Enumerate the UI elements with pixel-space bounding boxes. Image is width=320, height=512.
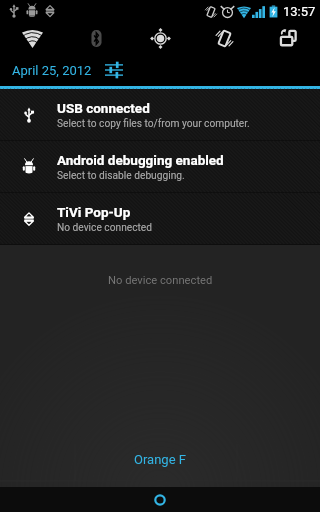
staticText: USB connected xyxy=(57,100,150,116)
button[interactable]: Auto rotate xyxy=(256,22,320,54)
button[interactable]: Orange F xyxy=(134,452,186,467)
button[interactable]: Home xyxy=(148,488,172,512)
staticText: Select to disable debugging. xyxy=(57,170,185,182)
button[interactable]: Location xyxy=(128,22,192,54)
button[interactable]: Wi-Fi xyxy=(0,22,64,54)
button[interactable]: TiVi Pop-Up xyxy=(0,193,320,244)
button[interactable]: Sound xyxy=(192,22,256,54)
button[interactable]: Android debugging enabled xyxy=(0,141,320,192)
staticText: TiVi Pop-Up xyxy=(57,204,131,220)
staticText: April 25, 2012 xyxy=(12,63,92,78)
staticText: 13:57 xyxy=(283,4,316,19)
button[interactable]: Settings xyxy=(102,58,126,82)
staticText: No device connected xyxy=(108,274,213,287)
staticText: No device connected xyxy=(57,222,152,234)
staticText: Android debugging enabled xyxy=(57,152,224,168)
staticText: Select to copy files to/from your comput… xyxy=(57,118,250,130)
button[interactable]: USB connected xyxy=(0,89,320,140)
button[interactable]: Bluetooth xyxy=(64,22,128,54)
staticText: Orange F xyxy=(134,452,186,467)
